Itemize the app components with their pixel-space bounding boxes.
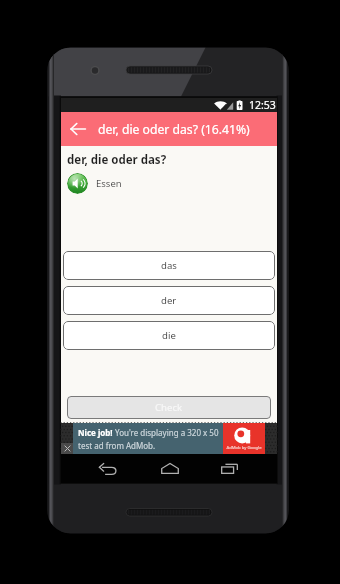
staticText: AdMob by Google [226, 445, 262, 451]
button[interactable]: der [63, 286, 275, 315]
staticText: Check [155, 401, 183, 414]
button[interactable]: Recent apps [207, 454, 251, 483]
staticText: die [162, 329, 176, 342]
staticText: der, die oder das? [67, 152, 167, 168]
button[interactable]: Close ad [61, 423, 277, 454]
button[interactable]: Home [148, 454, 192, 483]
staticText: der [161, 294, 177, 307]
button[interactable]: die [63, 321, 275, 350]
button[interactable]: Close ad [61, 443, 73, 454]
button[interactable]: das [63, 251, 275, 280]
staticText: test ad from AdMob. [78, 440, 156, 451]
button[interactable]: Play audio [67, 173, 88, 194]
button[interactable]: Back [61, 112, 94, 146]
staticText: der, die oder das? (16.41%) [98, 121, 250, 138]
staticText: das [161, 259, 177, 272]
button[interactable]: Back [86, 454, 130, 483]
button[interactable]: Check [67, 396, 271, 419]
staticText: Essen [96, 177, 122, 190]
staticText: 12:53 [249, 98, 276, 112]
staticText: You're displaying a 320 x 50 [113, 427, 219, 438]
staticText: Nice job! [78, 427, 113, 438]
